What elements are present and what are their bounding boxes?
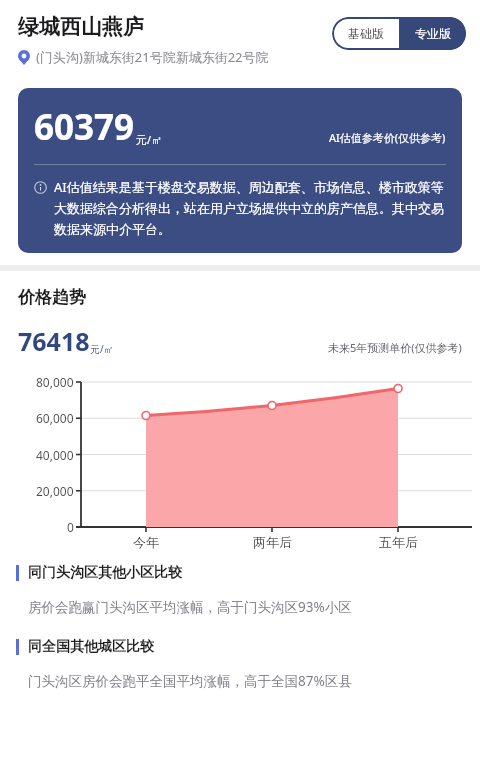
button[interactable]: 60379: [18, 88, 462, 253]
staticText: 两年后: [253, 534, 292, 550]
button[interactable]: 专业版: [399, 17, 466, 50]
staticText: 76418: [18, 324, 90, 358]
staticText: 20,000: [36, 483, 74, 499]
staticText: 60,000: [36, 410, 74, 426]
staticText: 价格趋势: [18, 287, 86, 308]
staticText: 未来5年预测单价(仅供参考): [328, 340, 462, 355]
staticText: 0: [67, 519, 74, 535]
button[interactable]: 基础版: [332, 17, 399, 50]
staticText: AI估值结果是基于楼盘交易数据、周边配套、市场信息、楼市政策等大数据综合分析得出…: [54, 178, 446, 238]
staticText: 绿城西山燕庐: [18, 14, 144, 40]
staticText: 同门头沟区其他小区比较: [28, 564, 182, 582]
button[interactable]: 同门头沟区其他小区比较: [0, 564, 480, 628]
staticText: 同全国其他城区比较: [28, 638, 154, 656]
staticText: AI估值参考价(仅供参考): [329, 130, 446, 145]
button[interactable]: 同全国其他城区比较: [0, 638, 480, 702]
staticText: (门头沟)新城东街21号院新城东街22号院: [36, 48, 269, 66]
staticText: 门头沟区房价会跑平全国平均涨幅，高于全国87%区县: [28, 672, 352, 690]
staticText: 基础版: [348, 26, 384, 41]
staticText: 专业版: [415, 26, 451, 41]
staticText: 五年后: [379, 534, 418, 550]
staticText: 今年: [133, 534, 159, 550]
staticText: 房价会跑赢门头沟区平均涨幅，高于门头沟区93%小区: [28, 598, 352, 616]
staticText: 元/㎡: [136, 132, 163, 147]
staticText: 60379: [34, 103, 135, 151]
staticText: 元/㎡: [90, 342, 114, 356]
staticText: 80,000: [36, 374, 74, 390]
staticText: 40,000: [36, 447, 74, 463]
